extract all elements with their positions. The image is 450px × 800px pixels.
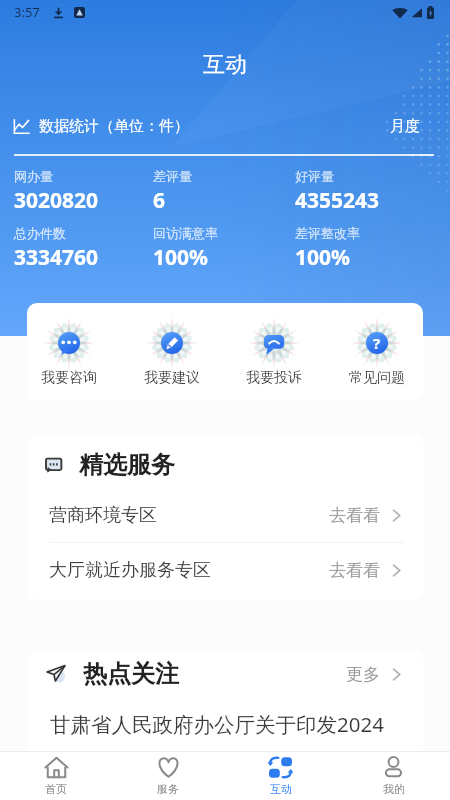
staticText: 差评量 [153,168,192,184]
staticText: 去看看 [329,560,380,581]
staticText: 互动 [0,51,450,79]
staticText: 月度 [390,117,420,136]
staticText: 好评量 [295,168,334,184]
button[interactable]: 我要投诉 [242,317,306,387]
button[interactable]: 更多 [346,664,404,685]
button[interactable]: 我要咨询 [37,317,101,387]
staticText: 互动 [270,782,292,796]
button[interactable]: 服务 [112,752,224,800]
button[interactable]: 大厅就近办服务专区 [27,543,423,597]
button[interactable]: 营商环境专区 [27,488,423,542]
staticText: 首页 [45,782,67,796]
staticText: 我要建议 [144,369,200,387]
staticText: 精选服务 [79,450,175,480]
staticText: 总办件数 [14,225,66,241]
button[interactable]: 首页 [0,752,112,800]
staticText: 服务 [157,782,179,796]
staticText: 差评整改率 [295,225,360,241]
staticText: 100% [153,243,208,272]
button[interactable]: 我要建议 [140,317,204,387]
button[interactable]: 我的 [337,752,450,800]
staticText: 100% [295,243,350,272]
button[interactable]: 互动 [224,752,337,800]
staticText: 去看看 [329,505,380,526]
button[interactable]: 甘肃省人民政府办公厅关于印发2024 [27,710,423,738]
staticText: 我的 [383,782,405,796]
staticText: 6 [153,186,166,215]
staticText: 3020820 [14,186,99,215]
staticText: 回访满意率 [153,225,218,241]
staticText: 网办量 [14,168,53,184]
staticText: 热点关注 [83,659,179,689]
staticText: 我要咨询 [41,369,97,387]
staticText: 数据统计（单位：件） [39,117,189,136]
staticText: 更多 [346,664,380,685]
staticText: 3334760 [14,243,99,272]
staticText: 我要投诉 [246,369,302,387]
staticText: 大厅就近办服务专区 [49,559,211,582]
staticText: ? [373,333,381,353]
staticText: 营商环境专区 [49,504,157,527]
staticText: 4355243 [295,186,380,215]
staticText: 常见问题 [349,369,405,387]
staticText: 3:57 [14,3,40,21]
button[interactable]: ? [345,317,409,387]
